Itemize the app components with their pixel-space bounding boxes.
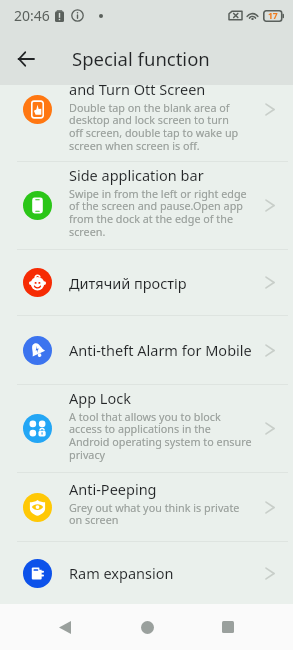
button[interactable]: Home <box>132 612 162 642</box>
button[interactable]: Anti-Peeping <box>0 473 293 541</box>
button[interactable]: Back <box>0 33 52 85</box>
staticText: Double tap on the blank area of desktop … <box>69 100 239 153</box>
staticText: Дитячий простір <box>69 273 187 293</box>
staticText: Side application bar <box>69 165 204 185</box>
button[interactable]: App Lock <box>0 385 293 472</box>
staticText: 20:46 <box>14 6 50 25</box>
button[interactable]: Ram expansion <box>0 542 293 604</box>
staticText: 17 <box>268 10 278 22</box>
button[interactable]: Side application bar <box>0 162 293 249</box>
button[interactable]: Recent apps <box>213 612 243 642</box>
staticText: Double Tap to Turn On Screen and Turn Ot… <box>69 85 261 99</box>
staticText: Swipe in from the left or right edge of … <box>69 186 247 239</box>
staticText: Anti-Peeping <box>69 479 157 499</box>
staticText: Special function <box>72 46 210 71</box>
staticText: App Lock <box>69 388 131 408</box>
staticText: Anti-theft Alarm for Mobile <box>69 340 252 360</box>
staticText: A tool that allows you to block access t… <box>69 409 252 462</box>
staticText: Ram expansion <box>69 563 174 583</box>
button[interactable]: Back <box>50 612 80 642</box>
button[interactable]: Дитячий простір <box>0 250 293 315</box>
button[interactable]: Anti-theft Alarm for Mobile <box>0 316 293 384</box>
button[interactable]: Double Tap to Turn On Screen and Turn Ot… <box>0 85 293 161</box>
staticText: Grey out what you think is private on sc… <box>69 500 240 527</box>
